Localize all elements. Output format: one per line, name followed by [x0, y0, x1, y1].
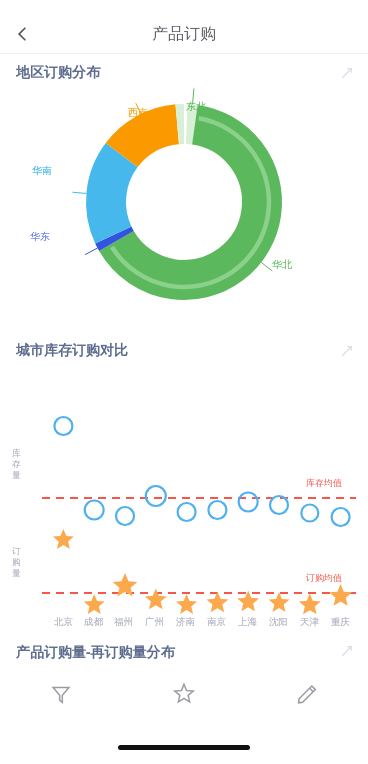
staticText: 华东 [30, 230, 50, 243]
button[interactable]: Filter [0, 670, 122, 718]
staticText: 广州 [145, 616, 164, 628]
staticText: 南京 [207, 616, 226, 628]
button[interactable]: 产品订购量-再订购量分布 [0, 632, 368, 670]
button[interactable]: Edit [245, 670, 368, 718]
staticText: 北京 [54, 616, 73, 628]
staticText: 济南 [176, 616, 195, 628]
staticText: 量 [12, 470, 21, 481]
button[interactable]: Back [0, 14, 44, 53]
staticText: 产品订购量-再订购量分布 [16, 642, 175, 661]
staticText: 沈阳 [269, 616, 288, 628]
staticText: 福州 [114, 616, 133, 628]
staticText: 库存均值 [306, 477, 342, 488]
staticText: 存 [12, 459, 21, 470]
staticText: 库 [12, 448, 21, 459]
staticText: 订购均值 [306, 572, 342, 583]
staticText: 西南 [128, 106, 148, 119]
staticText: 产品订购 [152, 24, 216, 44]
staticText: 城市库存订购对比 [16, 342, 128, 360]
staticText: 华北 [272, 258, 292, 271]
button[interactable]: 城市库存订购对比 [0, 332, 368, 370]
staticText: 量 [12, 568, 21, 579]
staticText: 华南 [32, 164, 52, 177]
staticText: 订 [12, 546, 21, 557]
staticText: 上海 [238, 616, 257, 628]
staticText: 购 [12, 557, 21, 568]
button[interactable]: 地区订购分布 [0, 54, 368, 92]
staticText: 地区订购分布 [16, 64, 100, 82]
other: Expand [340, 344, 354, 358]
staticText: 重庆 [331, 616, 350, 628]
other: Expand [340, 66, 354, 80]
staticText: 天津 [300, 616, 319, 628]
other: Expand [340, 644, 354, 658]
button[interactable]: Favorite [122, 670, 245, 718]
staticText: 东北 [186, 100, 206, 113]
staticText: 成都 [84, 616, 103, 628]
